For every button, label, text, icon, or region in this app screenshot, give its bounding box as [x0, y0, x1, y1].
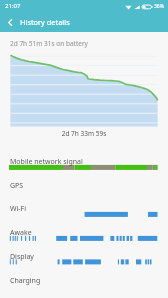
staticText: Wi-Fi	[10, 204, 27, 214]
button[interactable]: GPS	[0, 179, 168, 203]
staticText: 36%	[154, 3, 164, 10]
button[interactable]: Display	[0, 250, 168, 274]
button[interactable]: Back	[0, 12, 20, 32]
staticText: History details	[20, 17, 70, 27]
staticText: 2d 7h 51m 31s on battery	[10, 39, 88, 48]
button[interactable]: Awake	[0, 226, 168, 250]
staticText: Display	[10, 252, 34, 262]
staticText: GPS	[10, 181, 24, 191]
staticText: Awake	[10, 228, 32, 238]
staticText: Charging	[10, 276, 41, 286]
staticText: 21:07	[5, 2, 21, 10]
button[interactable]: Wi-Fi	[0, 202, 168, 226]
staticText: 2d 7h 33m 59s	[0, 129, 168, 138]
button[interactable]: Charging	[0, 274, 168, 298]
button[interactable]: Mobile network signal	[0, 155, 168, 179]
staticText: Mobile network signal	[10, 157, 83, 167]
